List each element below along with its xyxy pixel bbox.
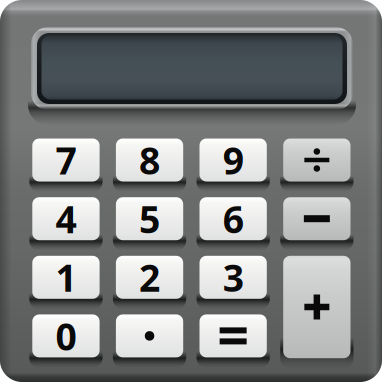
button[interactable]	[199, 314, 267, 357]
button[interactable]	[283, 138, 350, 181]
button[interactable]: 6	[199, 197, 267, 240]
button[interactable]: 4	[32, 197, 100, 240]
button[interactable]: 1	[32, 256, 100, 299]
staticText: 7	[55, 135, 76, 185]
button[interactable]: 8	[116, 138, 183, 181]
button[interactable]: 9	[199, 138, 267, 181]
staticText: 3	[223, 252, 244, 302]
button[interactable]: 2	[116, 256, 183, 299]
button[interactable]: 3	[199, 256, 267, 299]
button[interactable]	[283, 197, 350, 240]
button[interactable]: 0	[32, 314, 100, 357]
button[interactable]: 5	[116, 197, 183, 240]
staticText: 4	[55, 194, 76, 243]
staticText: 0	[55, 311, 76, 361]
button[interactable]	[116, 314, 183, 357]
button[interactable]: 7	[32, 138, 100, 181]
staticText: 2	[139, 252, 160, 302]
button[interactable]	[283, 256, 350, 358]
staticText: 9	[223, 135, 244, 185]
staticText: 8	[139, 135, 160, 185]
staticText: 1	[55, 252, 76, 302]
staticText: 6	[223, 194, 244, 243]
staticText: 5	[139, 194, 160, 243]
